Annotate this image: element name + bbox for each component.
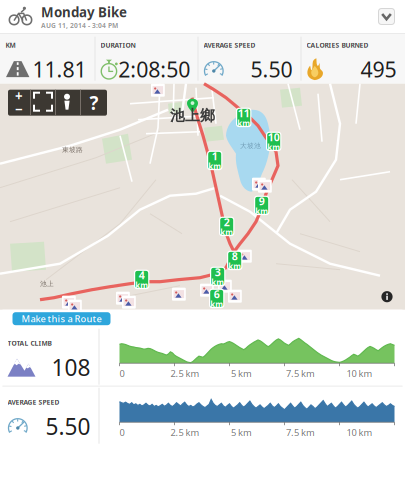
staticText: 5 km — [231, 367, 252, 380]
staticText: 2.5 km — [170, 426, 199, 439]
button[interactable]: Fullscreen — [31, 90, 55, 116]
staticText: km — [220, 227, 233, 238]
staticText: 10 km — [346, 426, 372, 439]
staticText: 8 — [232, 249, 238, 263]
staticText: 7.5 km — [286, 426, 315, 439]
button[interactable]: Make this a Route — [12, 312, 110, 325]
staticText: km — [210, 299, 223, 310]
button[interactable]: Help — [81, 90, 107, 116]
staticText: km — [208, 161, 221, 172]
staticText: 5.50 — [45, 411, 90, 441]
staticText: 池上 — [40, 280, 54, 288]
staticText: CALORIES BURNED — [306, 41, 368, 50]
staticText: 2.5 km — [170, 367, 199, 380]
staticText: km — [255, 206, 268, 217]
staticText: 2:08:50 — [118, 55, 190, 83]
staticText: 5 km — [231, 426, 252, 439]
staticText: 2 — [224, 215, 230, 229]
staticText: + — [15, 87, 23, 105]
staticText: km — [135, 280, 148, 291]
staticText: AVERAGE SPEED — [203, 41, 255, 50]
button[interactable]: Street View — [56, 90, 80, 116]
staticText: ? — [89, 90, 98, 115]
staticText: KM — [5, 41, 15, 50]
staticText: 東坡路 — [62, 146, 83, 154]
staticText: 0 — [119, 367, 124, 380]
staticText: AUG 11, 2014 - 3:04 PM — [41, 21, 118, 30]
staticText: DURATION — [100, 41, 135, 50]
staticText: 495 — [360, 55, 396, 83]
staticText: 5.50 — [250, 55, 292, 83]
staticText: km — [267, 142, 280, 153]
staticText: Monday Bike — [41, 3, 127, 21]
staticText: Make this a Route — [21, 312, 101, 325]
staticText: − — [15, 100, 23, 118]
staticText: 池上鄉 — [170, 107, 215, 125]
button[interactable]: Zoom — [8, 90, 30, 116]
staticText: km — [228, 261, 241, 272]
staticText: 9 — [259, 194, 265, 208]
staticText: 108 — [51, 352, 90, 382]
staticText: TOTAL CLIMB — [7, 339, 51, 348]
staticText: 4 — [139, 268, 145, 282]
staticText: AVERAGE SPEED — [7, 398, 59, 407]
staticText: 10 — [268, 130, 280, 144]
staticText: km — [237, 118, 250, 129]
staticText: 1 — [212, 149, 218, 163]
button[interactable]: Expand — [378, 8, 395, 25]
staticText: 11 — [238, 106, 250, 120]
staticText: 6 — [214, 287, 220, 301]
staticText: 11.81 — [32, 55, 86, 83]
staticText: 10 km — [346, 367, 372, 380]
staticText: 3 — [215, 265, 221, 279]
staticText: 0 — [119, 426, 124, 439]
staticText: 大坡池 — [240, 142, 261, 150]
staticText: 7.5 km — [286, 367, 315, 380]
staticText: km — [211, 277, 224, 288]
